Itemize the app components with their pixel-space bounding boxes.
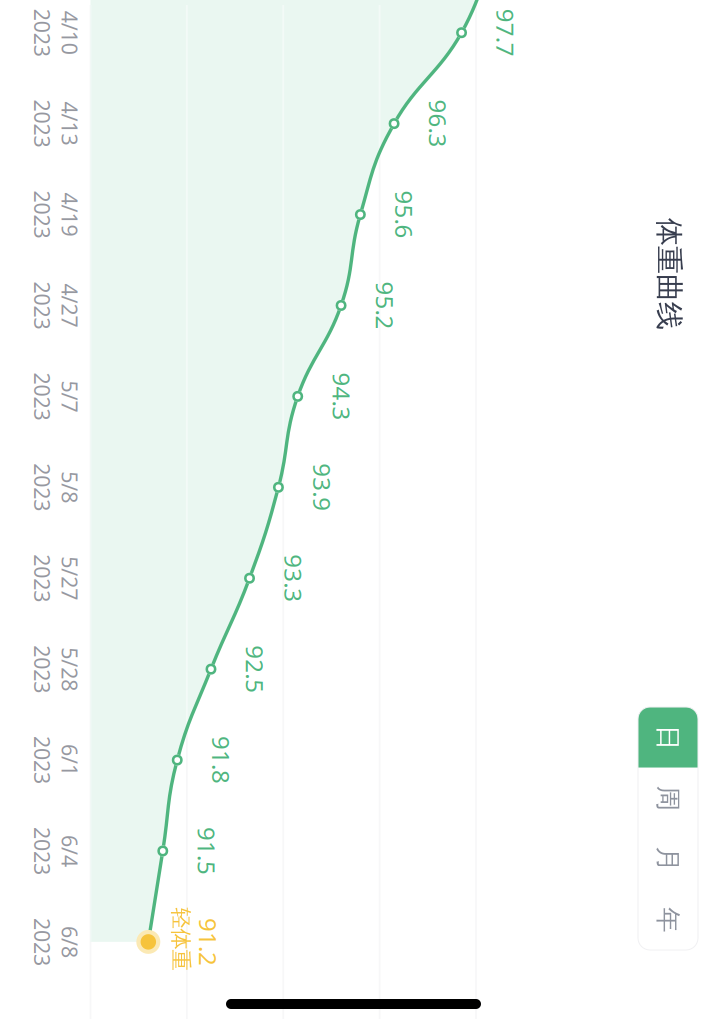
staticText: 2023 [32, 809, 80, 838]
staticText: 4/19 [34, 782, 78, 810]
staticText: 4/27 [125, 782, 169, 810]
staticText: 体重曲线 [60, 180, 172, 214]
staticText: 2023 [214, 809, 262, 838]
button[interactable]: 月 [670, 168, 708, 228]
staticText: 6/4 [677, 782, 708, 810]
staticText: 2023 [123, 809, 171, 838]
staticText: 95.6 [32, 446, 80, 478]
button[interactable]: 周 [610, 168, 671, 228]
